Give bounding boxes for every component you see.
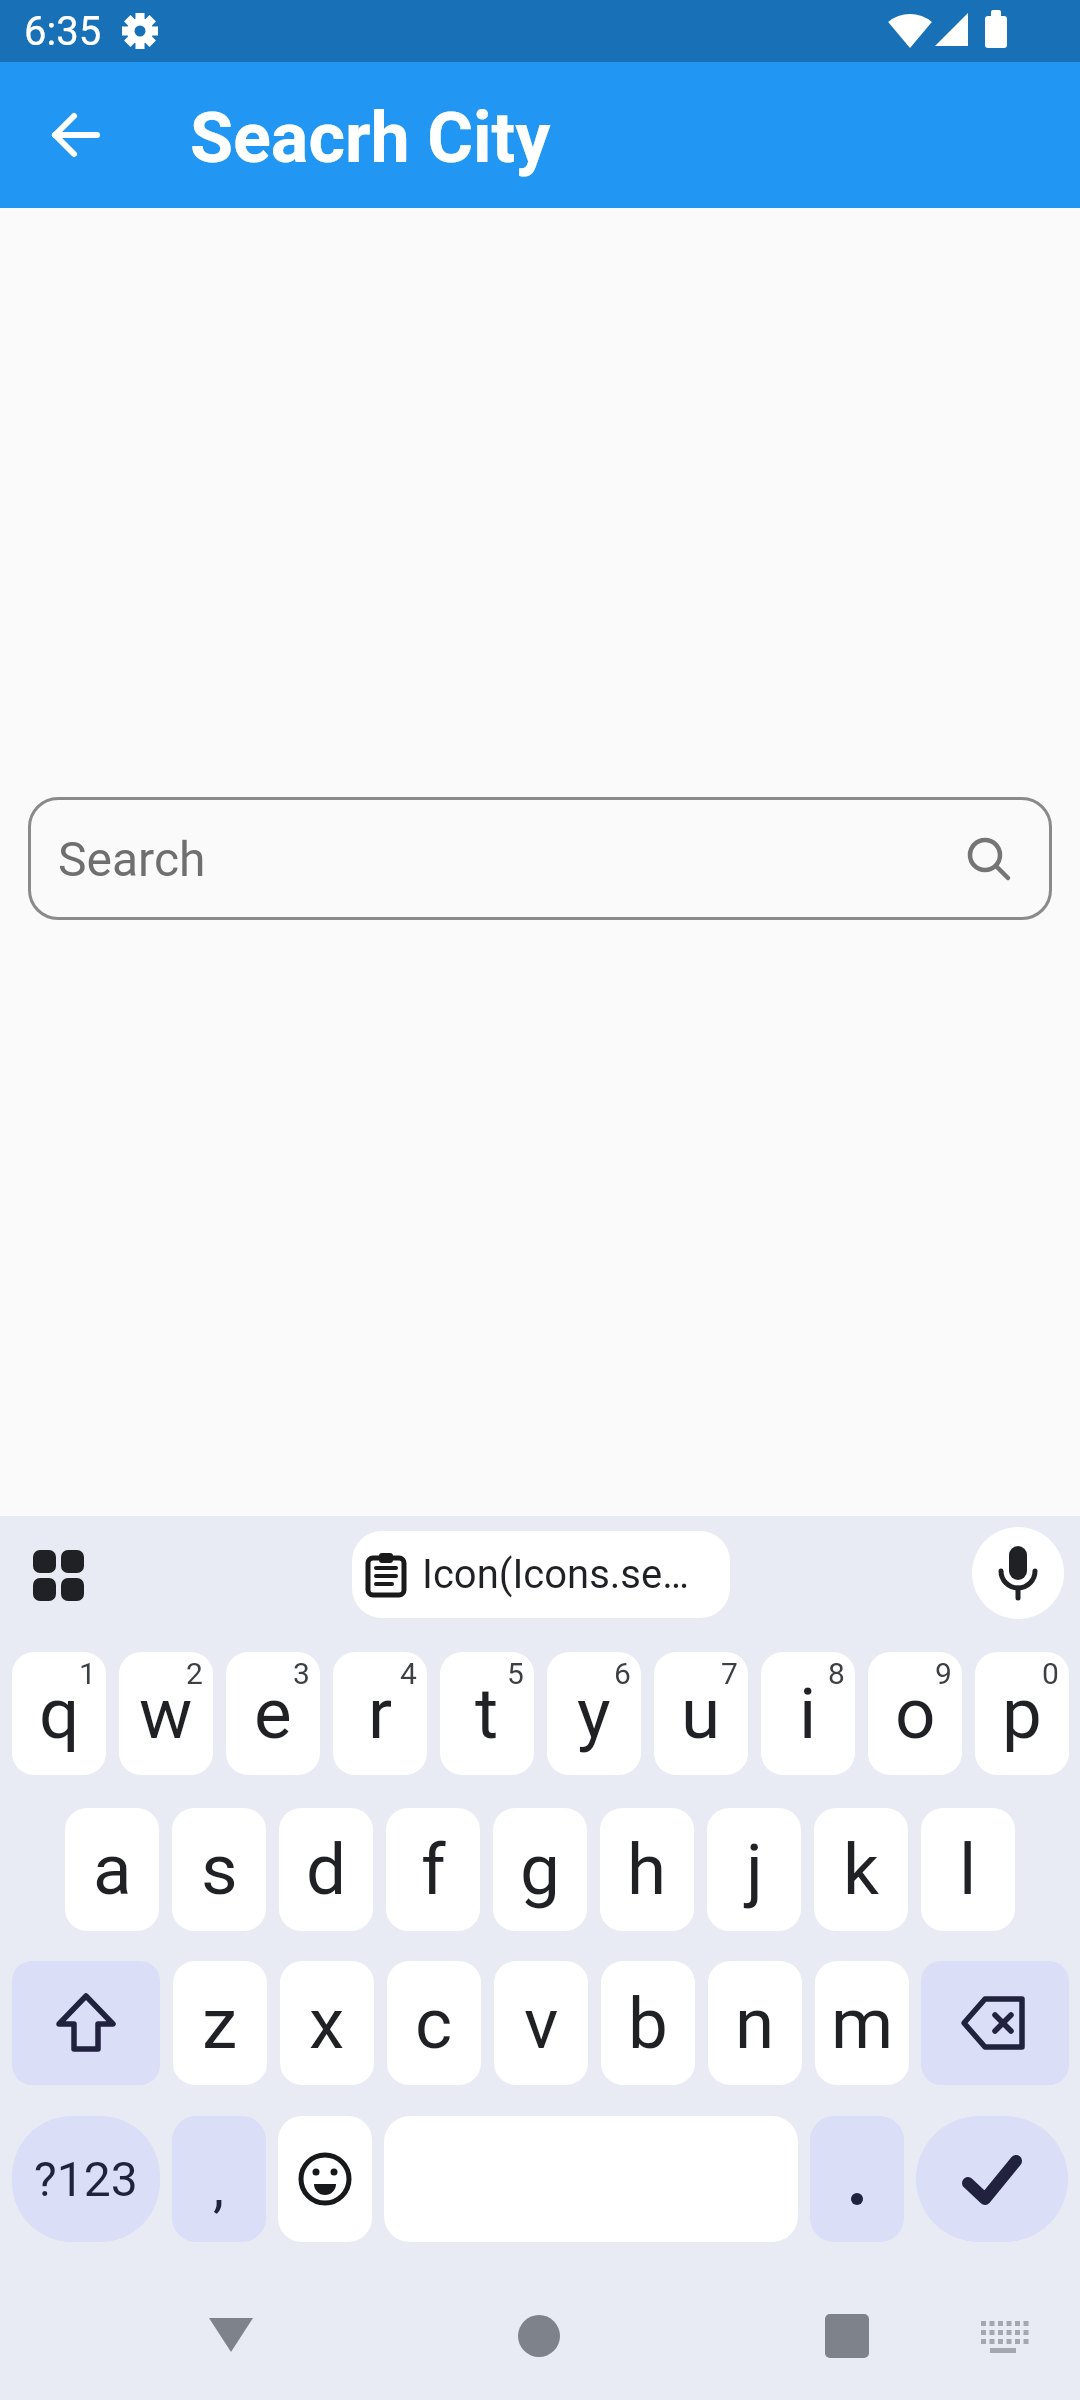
button[interactable]: e: [226, 1652, 320, 1775]
button[interactable]: s: [172, 1808, 266, 1931]
button[interactable]: [921, 1961, 1069, 2085]
button[interactable]: [824, 2313, 870, 2359]
button[interactable]: j: [707, 1808, 801, 1931]
staticText: Search: [58, 831, 206, 887]
button[interactable]: i: [761, 1652, 855, 1775]
button[interactable]: c: [387, 1961, 481, 2085]
staticText: k: [843, 1828, 879, 1911]
staticText: p: [1002, 1672, 1042, 1755]
staticText: m: [831, 1982, 894, 2065]
button[interactable]: m: [815, 1961, 909, 2085]
button[interactable]: q: [12, 1652, 106, 1775]
staticText: t: [475, 1672, 499, 1755]
button[interactable]: b: [601, 1961, 695, 2085]
button[interactable]: a: [65, 1808, 159, 1931]
staticText: h: [627, 1828, 667, 1911]
staticText: r: [368, 1672, 393, 1755]
staticText: o: [895, 1672, 936, 1755]
staticText: f: [421, 1828, 446, 1911]
staticText: x: [309, 1982, 345, 2065]
staticText: j: [746, 1828, 763, 1911]
button[interactable]: ?123: [12, 2116, 160, 2242]
button[interactable]: ,: [172, 2116, 266, 2242]
staticText: a: [93, 1828, 132, 1911]
button[interactable]: n: [708, 1961, 802, 2085]
staticText: 6: [614, 1656, 631, 1691]
staticText: Seacrh City: [190, 97, 551, 179]
button[interactable]: w: [119, 1652, 213, 1775]
button[interactable]: [517, 2314, 561, 2358]
staticText: y: [577, 1672, 611, 1755]
button[interactable]: u: [654, 1652, 748, 1775]
staticText: b: [628, 1982, 668, 2065]
staticText: v: [524, 1982, 559, 2065]
button[interactable]: k: [814, 1808, 908, 1931]
staticText: 9: [935, 1656, 952, 1691]
button[interactable]: p: [975, 1652, 1069, 1775]
staticText: n: [735, 1982, 775, 2065]
staticText: w: [139, 1672, 193, 1755]
staticText: l: [959, 1828, 977, 1911]
staticText: ,: [213, 2154, 225, 2220]
button[interactable]: Icon(Icons.se…: [352, 1531, 730, 1618]
staticText: 6:35: [24, 8, 102, 55]
staticText: z: [202, 1982, 238, 2065]
staticText: 4: [400, 1656, 417, 1691]
staticText: 2: [186, 1656, 203, 1691]
button[interactable]: [916, 2116, 1068, 2242]
staticText: c: [415, 1982, 453, 2065]
staticText: 5: [507, 1656, 524, 1691]
button[interactable]: f: [386, 1808, 480, 1931]
button[interactable]: v: [494, 1961, 588, 2085]
button[interactable]: d: [279, 1808, 373, 1931]
button[interactable]: Search: [28, 797, 1052, 920]
button[interactable]: [47, 107, 103, 163]
staticText: 3: [293, 1656, 310, 1691]
staticText: 1: [79, 1656, 96, 1691]
button[interactable]: g: [493, 1808, 587, 1931]
button[interactable]: [12, 1961, 160, 2085]
staticText: 7: [721, 1656, 738, 1691]
button[interactable]: [33, 1550, 85, 1602]
button[interactable]: x: [280, 1961, 374, 2085]
button[interactable]: [980, 2320, 1030, 2358]
staticText: i: [799, 1672, 817, 1755]
button[interactable]: l: [921, 1808, 1015, 1931]
staticText: d: [306, 1828, 347, 1911]
button[interactable]: o: [868, 1652, 962, 1775]
button[interactable]: t: [440, 1652, 534, 1775]
button[interactable]: r: [333, 1652, 427, 1775]
button[interactable]: [278, 2116, 372, 2242]
button[interactable]: y: [547, 1652, 641, 1775]
button[interactable]: h: [600, 1808, 694, 1931]
button[interactable]: [810, 2116, 904, 2242]
staticText: 0: [1042, 1656, 1059, 1691]
button[interactable]: z: [173, 1961, 267, 2085]
staticText: s: [201, 1828, 238, 1911]
staticText: q: [39, 1672, 80, 1755]
staticText: u: [681, 1672, 721, 1755]
staticText: e: [254, 1672, 292, 1755]
button[interactable]: [205, 2312, 257, 2360]
staticText: ?123: [34, 2151, 138, 2207]
staticText: Icon(Icons.se…: [422, 1551, 689, 1598]
staticText: g: [520, 1828, 560, 1911]
staticText: 8: [828, 1656, 845, 1691]
button[interactable]: [972, 1527, 1064, 1619]
